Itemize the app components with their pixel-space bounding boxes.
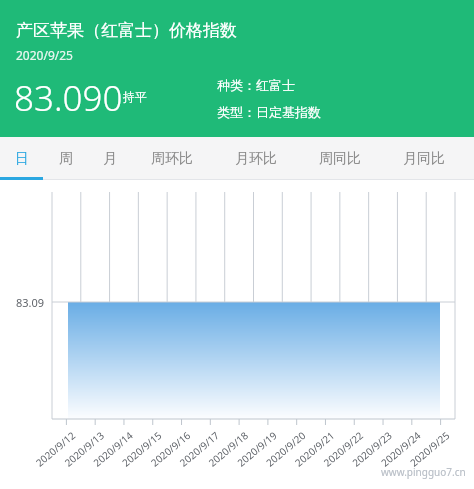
staticText: 日	[15, 150, 29, 168]
staticText: 周同比	[319, 150, 361, 168]
staticText: 2020/9/25	[16, 47, 73, 63]
button[interactable]: 月同比	[393, 137, 455, 180]
button[interactable]: 周同比	[309, 137, 371, 180]
button[interactable]: 周环比	[141, 137, 203, 180]
staticText: 月同比	[403, 150, 445, 168]
button[interactable]: 月环比	[225, 137, 287, 180]
button[interactable]: 日	[0, 137, 43, 180]
staticText: 83.090	[14, 74, 123, 122]
button[interactable]: 周	[44, 137, 88, 180]
staticText: 月环比	[235, 150, 277, 168]
staticText: 月	[103, 150, 117, 168]
staticText: 持平	[123, 89, 147, 104]
staticText: 周环比	[151, 150, 193, 168]
staticText: 种类：红富士	[217, 77, 295, 93]
staticText: 类型：日定基指数	[217, 104, 321, 120]
staticText: 产区苹果（红富士）价格指数	[16, 20, 237, 41]
staticText: 周	[59, 150, 73, 168]
button[interactable]: 月	[88, 137, 132, 180]
